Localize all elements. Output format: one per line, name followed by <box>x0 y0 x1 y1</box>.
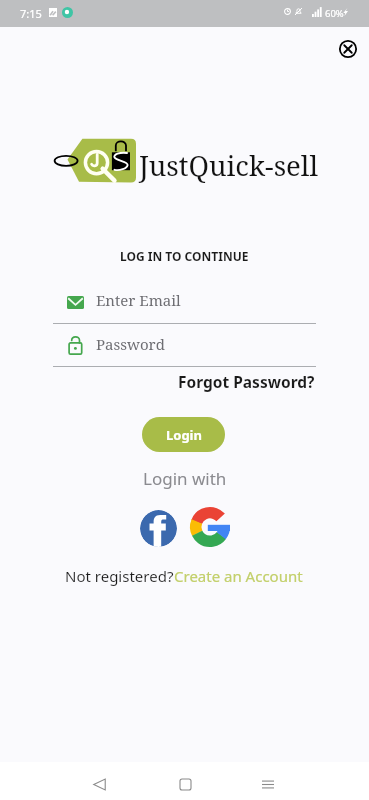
staticText: LOG IN TO CONTINUE <box>120 248 249 264</box>
staticText: Forgot Password? <box>178 371 315 392</box>
button[interactable]: Close <box>334 35 362 63</box>
button[interactable]: Forgot Password? <box>178 371 315 392</box>
staticText: Password <box>96 334 165 354</box>
staticText: JustQuick-sell <box>139 146 318 184</box>
staticText: Login with <box>143 467 227 490</box>
button[interactable]: Create an Account <box>174 566 303 586</box>
button[interactable]: Recents <box>253 769 283 799</box>
staticText: Create an Account <box>174 566 303 586</box>
button[interactable] <box>53 329 316 359</box>
button[interactable]: Login <box>142 417 225 452</box>
button[interactable]: Back <box>84 769 114 799</box>
button[interactable]: Home <box>170 769 200 799</box>
staticText: Not registered? <box>65 566 174 586</box>
staticText: Enter Email <box>96 290 181 310</box>
staticText: 7:15 <box>20 6 42 21</box>
button[interactable]: Login with Google <box>190 507 230 547</box>
button[interactable]: Login with Facebook <box>140 510 177 547</box>
staticText: Login <box>166 426 202 444</box>
staticText: 60% <box>325 7 344 20</box>
button[interactable] <box>53 285 316 315</box>
